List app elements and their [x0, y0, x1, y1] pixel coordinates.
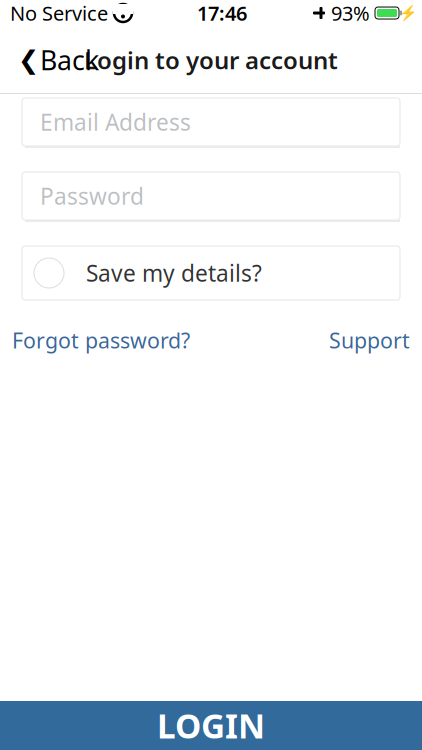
staticText: ❮ — [18, 46, 39, 74]
staticText: Login to your account — [84, 44, 338, 76]
button[interactable]: Save my details? — [22, 246, 400, 300]
staticText: 93% — [331, 0, 370, 26]
button[interactable]: Email Address — [22, 98, 400, 146]
staticText: 17:46 — [197, 0, 247, 26]
button[interactable]: Password — [22, 172, 400, 220]
staticText: Forgot password? — [12, 326, 190, 354]
staticText: LOGIN — [157, 703, 265, 748]
staticText: Save my details? — [86, 258, 262, 288]
staticText: Support — [329, 326, 410, 354]
button[interactable]: Support — [329, 322, 410, 358]
button[interactable]: LOGIN — [0, 701, 422, 750]
staticText: Back — [40, 42, 99, 78]
staticText: ⚡ — [399, 5, 417, 21]
staticText: No Service — [10, 0, 108, 26]
button[interactable]: Forgot password? — [12, 322, 190, 358]
staticText: Password — [40, 181, 144, 211]
button[interactable]: ❮ — [10, 34, 107, 86]
staticText: Email Address — [40, 107, 191, 137]
